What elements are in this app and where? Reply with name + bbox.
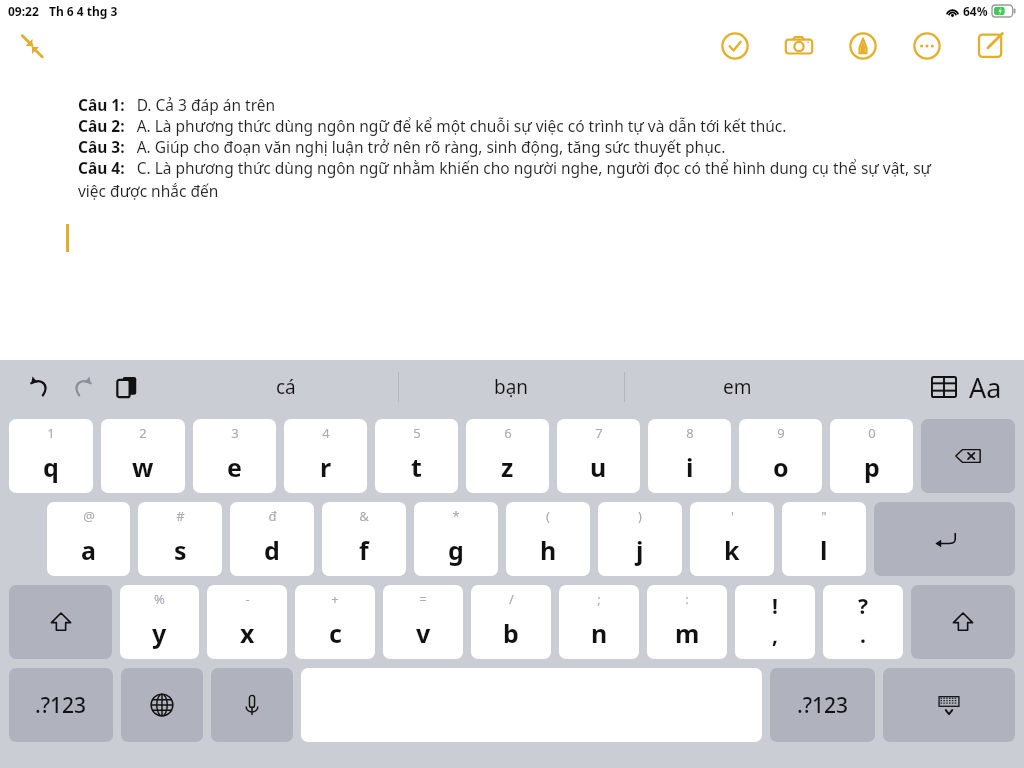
button[interactable]: @ xyxy=(47,502,130,576)
staticText: Câu 4: C. Là phương thức dùng ngôn ngữ n… xyxy=(78,157,948,202)
button[interactable]: 2 xyxy=(101,419,185,493)
staticText: 1 xyxy=(47,424,55,442)
button[interactable]: ) xyxy=(598,502,682,576)
button[interactable]: # xyxy=(138,502,222,576)
staticText: t xyxy=(411,450,422,484)
staticText: đ xyxy=(268,507,277,525)
button[interactable]: * xyxy=(414,502,498,576)
button[interactable]: bạn xyxy=(399,360,624,413)
staticText: Aa xyxy=(969,369,1002,406)
staticText: + xyxy=(331,590,339,608)
staticText: .?123 xyxy=(35,691,87,720)
button[interactable]: 9 xyxy=(739,419,822,493)
staticText: ! xyxy=(772,592,778,621)
button[interactable]: Dictation xyxy=(211,668,293,742)
button[interactable]: Aa xyxy=(967,369,1004,406)
staticText: n xyxy=(591,616,608,650)
staticText: 3 xyxy=(231,424,239,442)
button[interactable]: Numbers and symbols xyxy=(9,668,113,742)
button[interactable]: Numbers and symbols xyxy=(770,668,875,742)
staticText: @ xyxy=(83,507,95,525)
staticText: z xyxy=(501,450,514,484)
button[interactable]: More options xyxy=(906,25,948,67)
button[interactable]: đ xyxy=(230,502,314,576)
button[interactable]: 4 xyxy=(284,419,367,493)
staticText: v xyxy=(416,616,431,650)
staticText: 09:22 xyxy=(8,3,39,19)
button[interactable]: ' xyxy=(690,502,774,576)
button[interactable]: 3 xyxy=(193,419,276,493)
button[interactable]: Backspace xyxy=(921,419,1015,493)
button[interactable]: Paste xyxy=(110,370,144,404)
button[interactable]: 7 xyxy=(557,419,640,493)
staticText: 4 xyxy=(322,424,330,442)
staticText: : xyxy=(685,590,689,608)
button[interactable]: : xyxy=(647,585,727,659)
button[interactable]: 6 xyxy=(466,419,549,493)
staticText: cá xyxy=(276,374,296,400)
staticText: g xyxy=(448,533,464,567)
staticText: ( xyxy=(546,507,550,525)
staticText: Câu 3: A. Giúp cho đoạn văn nghị luận tr… xyxy=(78,136,726,157)
button[interactable]: 5 xyxy=(375,419,458,493)
staticText: 6 xyxy=(504,424,512,442)
button[interactable]: & xyxy=(322,502,406,576)
staticText: 8 xyxy=(686,424,694,442)
button[interactable]: ? xyxy=(823,585,903,659)
staticText: d xyxy=(264,533,280,567)
staticText: s xyxy=(174,533,187,567)
staticText: 7 xyxy=(595,424,603,442)
staticText: q xyxy=(43,450,59,484)
button[interactable]: Markup xyxy=(842,25,884,67)
button[interactable]: Câu 1: D. Cả 3 đáp án trên xyxy=(66,84,958,212)
staticText: h xyxy=(540,533,557,567)
staticText: " xyxy=(821,507,827,525)
button[interactable]: Table xyxy=(925,368,963,406)
staticText: % xyxy=(154,590,165,608)
button[interactable]: / xyxy=(471,585,551,659)
staticText: 5 xyxy=(413,424,421,442)
staticText: Th 6 4 thg 3 xyxy=(49,3,118,19)
button[interactable]: ; xyxy=(559,585,639,659)
button[interactable]: 0 xyxy=(830,419,913,493)
button[interactable]: = xyxy=(383,585,463,659)
staticText: .?123 xyxy=(797,691,849,720)
button[interactable]: Return xyxy=(874,502,1015,576)
staticText: k xyxy=(724,533,740,567)
staticText: y xyxy=(152,616,167,650)
button[interactable]: Camera xyxy=(778,25,820,67)
button[interactable]: Undo xyxy=(22,370,56,404)
staticText: Câu 1: D. Cả 3 đáp án trên xyxy=(78,94,276,115)
staticText: . xyxy=(860,621,866,650)
button[interactable]: cá xyxy=(174,360,398,413)
staticText: bạn xyxy=(494,374,529,400)
button[interactable]: Shift xyxy=(9,585,112,659)
button[interactable]: em xyxy=(625,360,850,413)
staticText: ? xyxy=(858,592,869,621)
staticText: f xyxy=(359,533,369,567)
button[interactable]: New note xyxy=(970,25,1012,67)
button[interactable]: + xyxy=(295,585,375,659)
button[interactable]: - xyxy=(207,585,287,659)
button[interactable]: Redo xyxy=(66,370,100,404)
staticText: , xyxy=(772,621,778,650)
staticText: b xyxy=(503,616,519,650)
button[interactable]: 8 xyxy=(648,419,731,493)
button[interactable]: ! xyxy=(735,585,815,659)
button[interactable]: Change language xyxy=(121,668,203,742)
button[interactable]: Collapse xyxy=(14,28,50,64)
button[interactable]: Done xyxy=(714,25,756,67)
staticText: i xyxy=(686,450,694,484)
staticText: Câu 2: A. Là phương thức dùng ngôn ngữ đ… xyxy=(78,115,787,136)
button[interactable]: 1 xyxy=(9,419,93,493)
button[interactable]: % xyxy=(120,585,199,659)
staticText: w xyxy=(132,450,154,484)
button[interactable]: ( xyxy=(506,502,590,576)
button[interactable]: Hide keyboard xyxy=(883,668,1015,742)
staticText: / xyxy=(509,590,514,608)
button[interactable]: Shift xyxy=(911,585,1015,659)
staticText: l xyxy=(820,533,828,567)
staticText: ) xyxy=(638,507,642,525)
button[interactable]: " xyxy=(782,502,866,576)
